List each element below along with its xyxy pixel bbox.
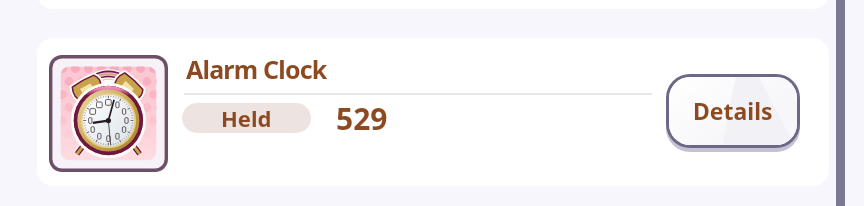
button[interactable]: Details (666, 74, 802, 154)
staticText: 529 (336, 98, 388, 139)
button[interactable]: Alarm Clock icon (37, 38, 829, 186)
staticText: Alarm Clock (186, 52, 327, 86)
other: Alarm Clock icon (49, 55, 168, 172)
button[interactable]: Held (182, 103, 311, 133)
staticText: Held (221, 103, 272, 133)
staticText: Details (693, 95, 773, 126)
